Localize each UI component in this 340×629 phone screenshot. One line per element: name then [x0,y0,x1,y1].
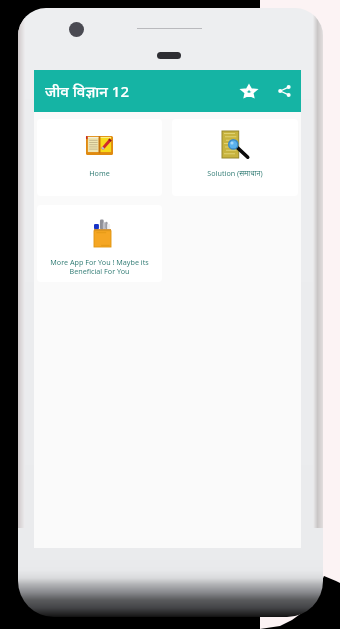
button[interactable]: Favourite [230,70,268,112]
staticText: जीव विज्ञान 12 [45,81,130,101]
staticText: More App For You ! Maybe its Beneficial … [41,257,158,276]
button[interactable]: Home [37,119,162,196]
button[interactable]: Share [268,70,301,112]
staticText: Home [89,168,110,178]
button[interactable]: More App For You ! Maybe its Beneficial … [37,205,162,282]
staticText: Solution (समाधान) [207,168,263,178]
button[interactable]: Solution (समाधान) [172,119,298,196]
